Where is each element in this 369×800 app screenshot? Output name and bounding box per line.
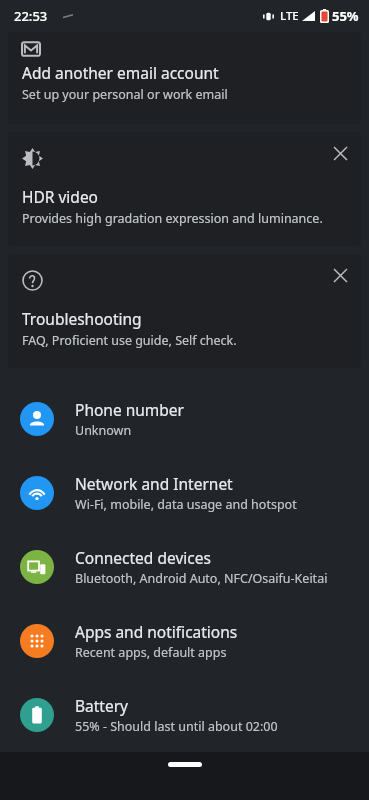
button[interactable]: Dismiss bbox=[325, 260, 355, 290]
staticText: 55% bbox=[332, 7, 359, 25]
button[interactable]: Display bbox=[0, 752, 369, 800]
button[interactable]: Home bbox=[168, 762, 202, 767]
staticText: Apps and notifications bbox=[75, 621, 238, 642]
button[interactable]: Battery bbox=[0, 678, 369, 752]
staticText: Recent apps, default apps bbox=[75, 644, 227, 661]
staticText: 22:53 bbox=[14, 7, 48, 25]
staticText: Battery bbox=[75, 695, 129, 716]
button[interactable]: Dismiss bbox=[325, 138, 355, 168]
staticText: Unknown bbox=[75, 422, 132, 439]
staticText: Set up your personal or work email bbox=[22, 86, 228, 103]
staticText: Add another email account bbox=[22, 62, 219, 83]
staticText: Troubleshooting bbox=[22, 308, 142, 329]
button[interactable]: Troubleshooting bbox=[8, 254, 361, 368]
staticText: Network and Internet bbox=[75, 473, 233, 494]
other: HDR video bbox=[22, 148, 43, 169]
staticText: Bluetooth, Android Auto, NFC/Osaifu-Keit… bbox=[75, 570, 328, 587]
button[interactable]: Phone number bbox=[0, 382, 369, 456]
other: Troubleshooting bbox=[22, 270, 43, 291]
staticText: HDR video bbox=[22, 186, 98, 207]
button[interactable]: Apps and notifications bbox=[0, 604, 369, 678]
button[interactable]: Connected devices bbox=[0, 530, 369, 604]
staticText: Provides high gradation expression and l… bbox=[22, 210, 323, 227]
button[interactable]: Add another email account bbox=[8, 32, 361, 124]
staticText: 55% - Should last until about 02:00 bbox=[75, 718, 278, 735]
staticText: Phone number bbox=[75, 399, 185, 420]
staticText: Wi-Fi, mobile, data usage and hotspot bbox=[75, 496, 297, 513]
button[interactable]: HDR video bbox=[8, 132, 361, 246]
button[interactable]: Network and Internet bbox=[0, 456, 369, 530]
staticText: LTE bbox=[280, 8, 299, 24]
staticText: Connected devices bbox=[75, 547, 211, 568]
staticText: FAQ, Proficient use guide, Self check. bbox=[22, 332, 237, 349]
